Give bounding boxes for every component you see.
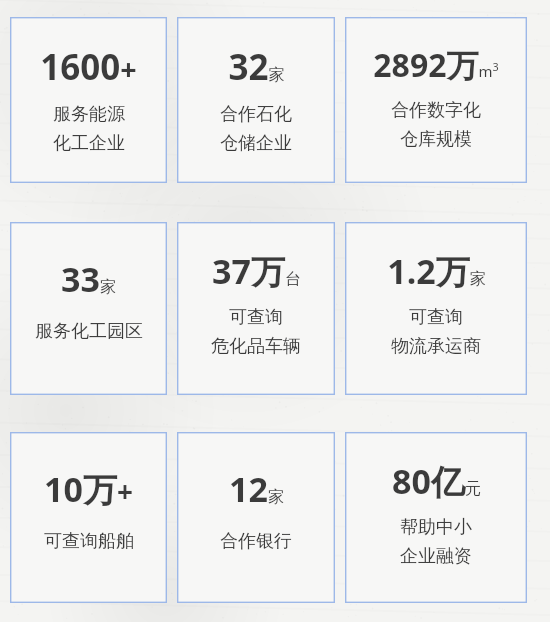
staticText: 化工企业: [53, 132, 125, 155]
staticText: 10万+: [44, 466, 133, 512]
staticText: 合作银行: [220, 530, 292, 553]
button[interactable]: 32家 合作石化仓储企业: [177, 17, 335, 183]
staticText: 帮助中小: [400, 516, 472, 539]
staticText: 仓储企业: [220, 132, 292, 155]
staticText: 可查询: [229, 306, 283, 329]
staticText: 37万台: [212, 248, 301, 294]
staticText: 企业融资: [400, 545, 472, 568]
staticText: 可查询: [409, 306, 463, 329]
staticText: 物流承运商: [391, 335, 481, 358]
staticText: 32家: [228, 43, 285, 91]
button[interactable]: 37万台 可查询危化品车辆: [177, 222, 335, 395]
staticText: 仓库规模: [400, 128, 472, 151]
button[interactable]: 10万+ 可查询船舶: [10, 432, 167, 603]
button[interactable]: 33家 服务化工园区: [10, 222, 167, 395]
staticText: 12家: [229, 466, 284, 512]
staticText: 合作石化: [220, 103, 292, 126]
staticText: 服务化工园区: [35, 320, 143, 343]
button[interactable]: 1.2万家 可查询物流承运商: [345, 222, 527, 395]
staticText: 服务能源: [53, 103, 125, 126]
staticText: 1600+: [40, 43, 137, 91]
staticText: 合作数字化: [391, 99, 481, 122]
staticText: 危化品车辆: [211, 335, 301, 358]
button[interactable]: 12家 合作银行: [177, 432, 335, 603]
staticText: 33家: [61, 256, 116, 302]
staticText: 2892万m3: [373, 43, 499, 87]
staticText: 可查询船舶: [44, 530, 134, 553]
button[interactable]: 1600+ 服务能源化工企业: [10, 17, 167, 183]
staticText: 80亿元: [392, 458, 481, 504]
button[interactable]: 80亿元 帮助中小企业融资: [345, 432, 527, 603]
button[interactable]: 2892万m3 合作数字化仓库规模: [345, 17, 527, 183]
staticText: 1.2万家: [387, 248, 486, 294]
